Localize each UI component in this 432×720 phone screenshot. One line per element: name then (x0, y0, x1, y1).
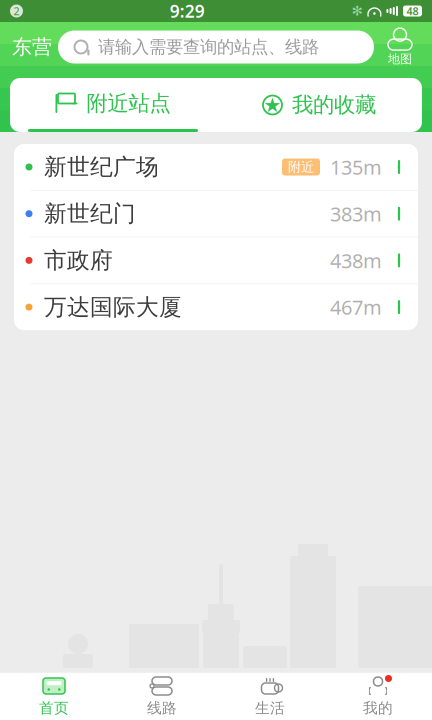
staticText: 东营 (12, 35, 52, 59)
staticText: 请输入需要查询的站点、线路 (98, 36, 319, 58)
staticText: 2 (13, 4, 19, 18)
staticText: 新世纪门 (44, 200, 136, 228)
button[interactable]: 请输入需要查询的站点、线路 (58, 30, 374, 63)
button[interactable]: 生活 (216, 672, 324, 720)
staticText: 135m (330, 154, 382, 180)
staticText: ✻ (351, 3, 362, 18)
button[interactable]: 附近站点 (10, 78, 216, 132)
staticText: 383m (330, 200, 382, 227)
staticText: 新世纪广场 (44, 153, 159, 181)
button[interactable]: 地图 (374, 25, 426, 69)
staticText: 我的收藏 (292, 92, 376, 118)
staticText: 48 (406, 4, 418, 18)
staticText: 附近 (288, 159, 314, 175)
button[interactable]: 东营 (6, 27, 58, 67)
staticText: 线路 (147, 699, 177, 717)
button[interactable]: 市政府 (14, 237, 418, 284)
staticText: 467m (330, 294, 382, 320)
staticText: 我的 (363, 699, 393, 717)
button[interactable]: 我的 (324, 672, 432, 720)
button[interactable]: ★ (216, 78, 422, 132)
staticText: 地图 (388, 52, 412, 66)
button[interactable]: 新世纪广场 (14, 144, 418, 191)
button[interactable]: 新世纪门 (14, 191, 418, 237)
button[interactable]: 万达国际大厦 (14, 284, 418, 330)
staticText: 万达国际大厦 (44, 293, 182, 321)
staticText: ★ (263, 94, 281, 116)
staticText: 9:29 (170, 0, 205, 22)
staticText: 首页 (39, 699, 69, 717)
button[interactable]: 首页 (0, 672, 108, 720)
staticText: 438m (330, 247, 382, 274)
staticText: 市政府 (44, 246, 113, 274)
staticText: 附近站点 (86, 90, 170, 117)
staticText: 生活 (255, 699, 285, 717)
button[interactable]: 线路 (108, 672, 216, 720)
